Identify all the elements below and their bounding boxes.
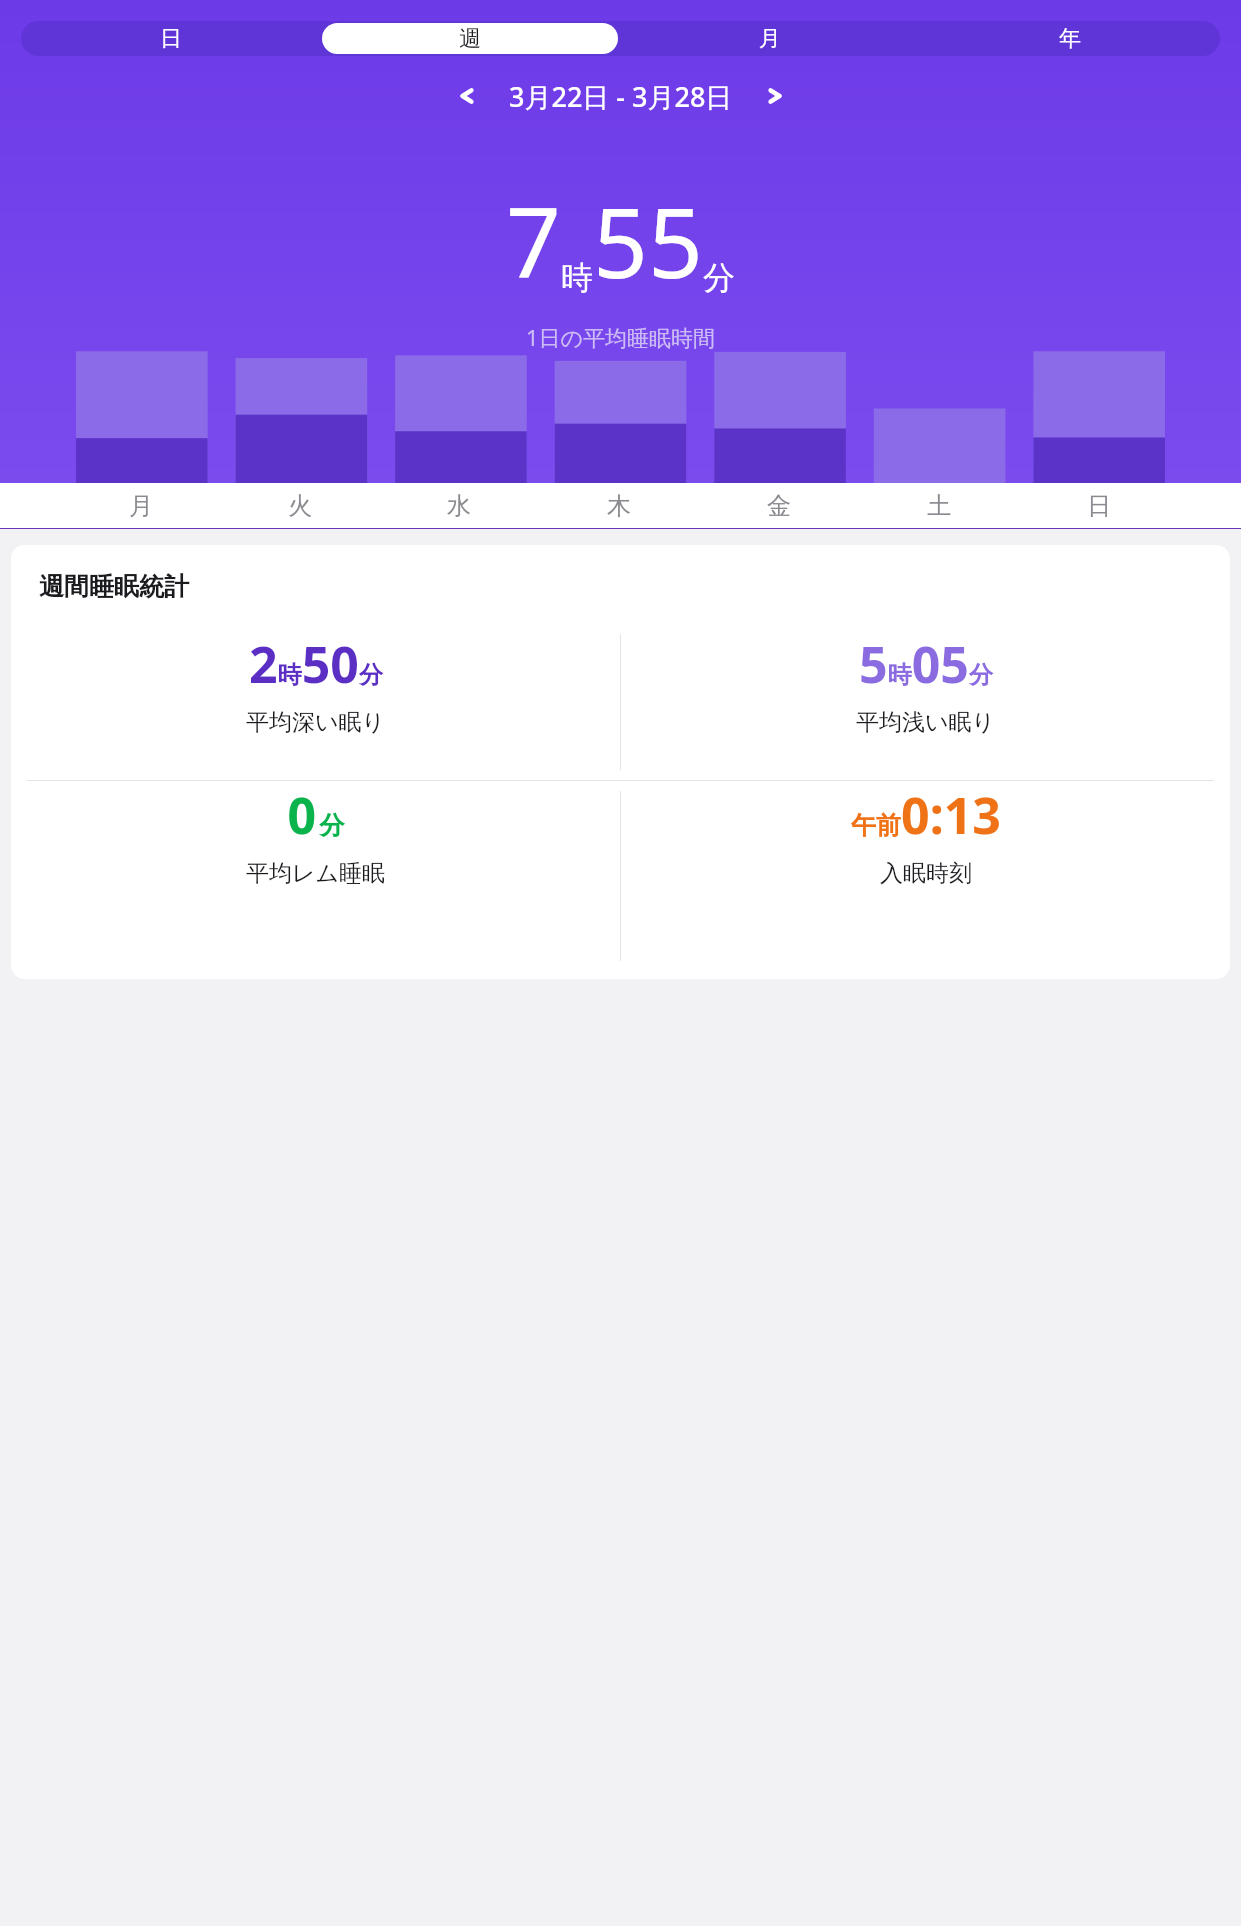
staticText: 日 (1087, 491, 1111, 521)
button[interactable]: 午前0:13 (621, 781, 1230, 914)
staticText: 日 (160, 25, 182, 53)
staticText: 火 (288, 491, 312, 521)
button[interactable]: Previous week (447, 76, 487, 116)
staticText: 木 (607, 491, 631, 521)
staticText: 時 (561, 258, 593, 298)
staticText: 月 (759, 25, 781, 53)
button[interactable]: 0 分 (11, 781, 620, 914)
button[interactable]: 日 (23, 23, 318, 54)
staticText: 午前0:13 (851, 781, 1001, 849)
staticText: 分 (703, 258, 735, 298)
staticText: 週間睡眠統計 (39, 571, 189, 602)
staticText: 7 (506, 175, 561, 306)
button[interactable]: 5時05分 (621, 624, 1230, 737)
staticText: 0 分 (287, 781, 345, 849)
staticText: 平均浅い眠り (856, 708, 996, 737)
button[interactable]: 週 (322, 23, 618, 54)
staticText: 3月22日 - 3月28日 (509, 78, 733, 115)
staticText: 5時05分 (859, 630, 993, 698)
staticText: 年 (1059, 25, 1081, 53)
button[interactable]: 2時50分 (11, 624, 620, 737)
staticText: 2時50分 (249, 630, 383, 698)
staticText: 平均レム睡眠 (246, 859, 386, 888)
button[interactable]: 年 (922, 23, 1218, 54)
staticText: 水 (447, 491, 471, 521)
staticText: 平均深い眠り (246, 708, 386, 737)
button[interactable]: Next week (755, 76, 795, 116)
staticText: 週 (459, 25, 481, 53)
staticText: 土 (927, 491, 951, 521)
staticText: 55 (593, 175, 703, 306)
staticText: 月 (129, 491, 153, 521)
staticText: 1日の平均睡眠時間 (0, 322, 1241, 352)
staticText: 入眠時刻 (880, 859, 972, 888)
staticText: 金 (767, 491, 791, 521)
button[interactable]: 月 (622, 23, 918, 54)
